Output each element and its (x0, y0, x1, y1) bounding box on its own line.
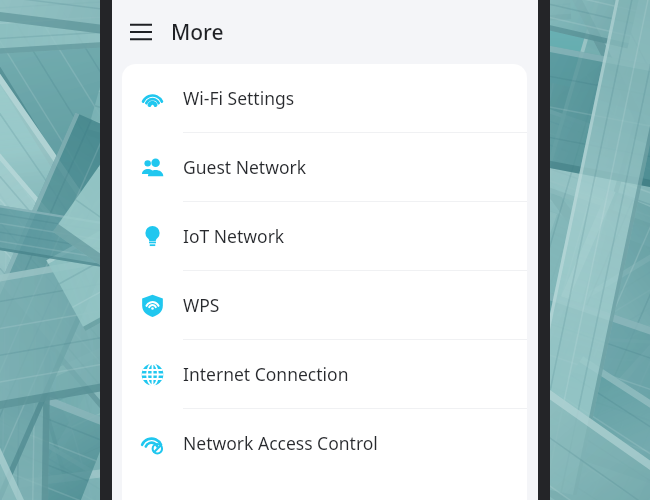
staticText: Network Access Control (183, 431, 378, 455)
button[interactable]: IoT Network (122, 202, 527, 270)
staticText: Guest Network (183, 155, 307, 179)
button[interactable]: Internet Connection (122, 340, 527, 408)
button[interactable]: WPS (122, 271, 527, 339)
button[interactable]: Network Access Control (122, 409, 527, 477)
staticText: Internet Connection (183, 362, 349, 386)
staticText: More (171, 18, 224, 47)
button[interactable]: Guest Network (122, 133, 527, 201)
button[interactable]: Wi-Fi Settings (122, 64, 527, 132)
staticText: Wi-Fi Settings (183, 86, 295, 110)
staticText: IoT Network (183, 224, 285, 248)
staticText: WPS (183, 293, 220, 317)
button[interactable]: Open navigation menu (119, 10, 163, 54)
